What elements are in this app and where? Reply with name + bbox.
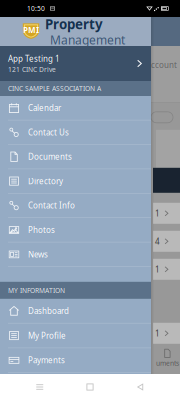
- button[interactable]: Home: [79, 376, 100, 397]
- staticText: 1: [155, 328, 160, 339]
- staticText: Management: [50, 32, 125, 48]
- button[interactable]: Calendar: [0, 96, 151, 120]
- button[interactable]: App Testing 1: [0, 46, 151, 81]
- staticText: 10:50: [27, 4, 45, 13]
- button[interactable]: Contact Info: [0, 194, 151, 218]
- staticText: PMI: [23, 25, 39, 35]
- staticText: CINC SAMPLE ASSOCIATION A: [8, 84, 101, 93]
- staticText: Payments: [28, 355, 65, 365]
- staticText: Account: [146, 60, 177, 70]
- staticText: App Testing 1: [8, 53, 60, 64]
- button[interactable]: My Profile: [0, 323, 151, 348]
- button[interactable]: Contact Us: [0, 120, 151, 145]
- button[interactable]: Payments: [0, 348, 151, 373]
- button[interactable]: News: [0, 242, 151, 267]
- staticText: Photos: [28, 225, 55, 235]
- staticText: News: [28, 249, 48, 260]
- staticText: Dashboard: [28, 305, 69, 316]
- button[interactable]: Directory: [0, 169, 151, 194]
- staticText: 4: [155, 236, 160, 247]
- staticText: Contact Info: [28, 200, 75, 211]
- staticText: 1: [155, 208, 160, 219]
- staticText: Contact Us: [28, 127, 69, 138]
- button[interactable]: Photos: [0, 218, 151, 242]
- staticText: 1: [155, 264, 160, 275]
- staticText: uments: [156, 359, 179, 368]
- button[interactable]: Back: [130, 376, 151, 397]
- button[interactable]: Recents: [29, 376, 50, 397]
- staticText: My Profile: [28, 330, 66, 341]
- staticText: 121 CINC Drive: [8, 65, 56, 74]
- staticText: Property: [45, 15, 103, 33]
- staticText: Directory: [28, 176, 63, 186]
- staticText: Documents: [28, 151, 72, 162]
- staticText: MY INFORMATION: [8, 286, 65, 295]
- staticText: Calendar: [28, 103, 61, 113]
- button[interactable]: Documents: [0, 145, 151, 169]
- button[interactable]: Dashboard: [0, 299, 151, 323]
